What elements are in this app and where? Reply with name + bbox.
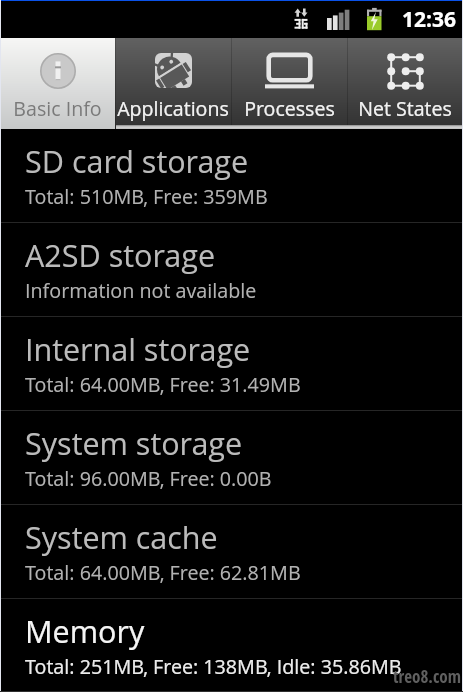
staticText: System storage — [25, 422, 243, 464]
staticText: Applications — [117, 95, 229, 122]
staticText: Total: 64.00MB, Free: 62.81MB — [25, 559, 301, 586]
staticText: Total: 96.00MB, Free: 0.00B — [25, 465, 272, 492]
staticText: Memory — [25, 610, 145, 652]
staticText: Processes — [244, 95, 335, 122]
button[interactable]: System storage — [0, 411, 463, 504]
staticText: Total: 251MB, Free: 138MB, Idle: 35.86MB — [25, 653, 402, 680]
button[interactable]: Basic Info — [0, 38, 115, 129]
button[interactable]: Net States — [347, 38, 463, 129]
button[interactable]: System cache — [0, 505, 463, 598]
staticText: A2SD storage — [25, 234, 215, 276]
button[interactable]: Processes — [231, 38, 347, 129]
staticText: Total: 510MB, Free: 359MB — [25, 183, 268, 210]
button[interactable]: Applications — [115, 38, 231, 129]
staticText: Basic Info — [13, 95, 102, 122]
button[interactable]: Internal storage — [0, 317, 463, 410]
staticText: Total: 64.00MB, Free: 31.49MB — [25, 371, 301, 398]
button[interactable]: A2SD storage — [0, 223, 463, 316]
button[interactable]: SD card storage — [0, 129, 463, 222]
staticText: System cache — [25, 516, 218, 558]
button[interactable]: Memory — [0, 599, 463, 692]
staticText: Internal storage — [25, 328, 251, 370]
staticText: treo8.com — [393, 665, 461, 688]
staticText: SD card storage — [25, 140, 249, 182]
staticText: Net States — [358, 95, 452, 122]
staticText: Information not available — [25, 277, 257, 304]
staticText: 12:36 — [402, 5, 456, 34]
